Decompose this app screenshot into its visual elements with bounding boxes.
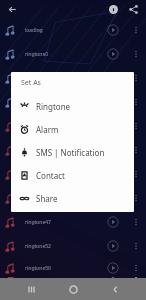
staticText: Set As bbox=[21, 78, 41, 88]
button[interactable]: More bbox=[131, 25, 141, 35]
button[interactable]: More bbox=[131, 241, 141, 251]
button[interactable]: Contact bbox=[11, 164, 134, 187]
staticText: Alarm bbox=[36, 124, 59, 135]
button[interactable]: Share bbox=[128, 4, 139, 15]
button[interactable]: More bbox=[131, 73, 141, 83]
staticText: Share bbox=[36, 193, 58, 204]
button[interactable]: loading bbox=[0, 18, 146, 42]
button[interactable]: Info bbox=[109, 5, 118, 14]
button[interactable]: More bbox=[131, 263, 141, 273]
button[interactable]: Back bbox=[104, 278, 126, 300]
staticText: Contact bbox=[36, 170, 65, 181]
button[interactable]: Share bbox=[11, 187, 134, 210]
button[interactable]: ringtone5 bbox=[0, 66, 146, 90]
staticText: ringtone47 bbox=[25, 219, 107, 226]
button[interactable]: Alarm bbox=[11, 118, 134, 141]
button[interactable]: Ringtone bbox=[11, 95, 134, 118]
button[interactable]: ringtone21 bbox=[0, 138, 146, 162]
staticText: ringtone34 bbox=[25, 171, 107, 178]
button[interactable]: More bbox=[131, 49, 141, 59]
button[interactable]: ringtone11 bbox=[0, 114, 146, 138]
staticText: ringtone56 bbox=[25, 265, 107, 272]
staticText: ringtone52 bbox=[25, 243, 107, 250]
button[interactable]: ringtone56 bbox=[0, 258, 146, 278]
staticText: SMS | Notification bbox=[36, 147, 105, 158]
staticText: Ringtone bbox=[36, 101, 71, 112]
button[interactable]: ringtone8 bbox=[0, 90, 146, 114]
button[interactable]: More bbox=[131, 97, 141, 107]
button[interactable]: ringtone47 bbox=[0, 210, 146, 234]
staticText: ringtone5 bbox=[25, 75, 107, 82]
button[interactable]: ringtone0 bbox=[0, 42, 146, 66]
staticText: loading bbox=[25, 27, 107, 34]
staticText: ringtone21 bbox=[25, 147, 107, 154]
button[interactable]: ringtone34 bbox=[0, 162, 146, 186]
button[interactable]: ringtone52 bbox=[0, 234, 146, 258]
staticText: ringtone0 bbox=[25, 51, 107, 58]
button[interactable]: ringtone40 bbox=[0, 186, 146, 210]
button[interactable]: More bbox=[131, 121, 141, 131]
staticText: ringtone11 bbox=[25, 123, 107, 130]
button[interactable]: Recents bbox=[20, 278, 42, 300]
button[interactable]: Back bbox=[7, 4, 18, 15]
staticText: ringtone40 bbox=[25, 195, 107, 202]
button[interactable]: More bbox=[131, 145, 141, 155]
button[interactable]: More bbox=[131, 193, 141, 203]
button[interactable]: Home bbox=[62, 278, 84, 300]
button[interactable]: SMS | Notification bbox=[11, 141, 134, 164]
button[interactable]: More bbox=[131, 217, 141, 227]
staticText: ringtone8 bbox=[25, 99, 107, 106]
button[interactable]: More bbox=[131, 169, 141, 179]
